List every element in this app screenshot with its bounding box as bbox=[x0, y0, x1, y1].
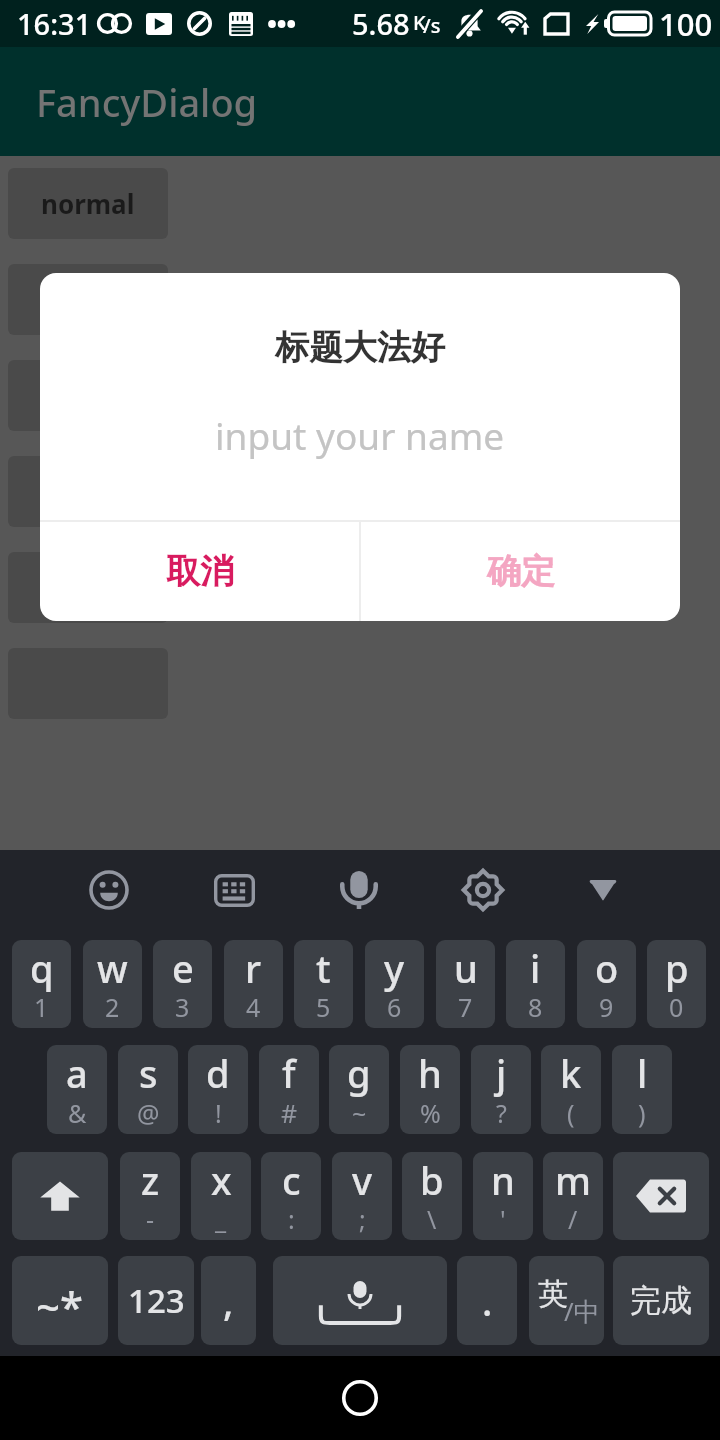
button[interactable]: u bbox=[436, 940, 495, 1028]
staticText: w bbox=[97, 942, 128, 994]
staticText: v bbox=[352, 1154, 373, 1206]
button[interactable]: i bbox=[506, 940, 565, 1028]
button[interactable]: a bbox=[8, 360, 168, 431]
staticText: # bbox=[281, 1096, 298, 1130]
staticText: : bbox=[288, 1202, 295, 1236]
button[interactable]: c bbox=[8, 264, 168, 335]
button[interactable] bbox=[8, 456, 168, 527]
staticText: ~ bbox=[352, 1096, 367, 1130]
button[interactable]: Keyboard layout bbox=[207, 863, 261, 917]
button[interactable]: Done bbox=[613, 1256, 709, 1345]
staticText: 2 bbox=[105, 990, 120, 1024]
staticText: . bbox=[482, 1275, 493, 1327]
staticText: / bbox=[568, 1202, 578, 1236]
staticText: K bbox=[413, 9, 426, 36]
button[interactable]: z bbox=[120, 1152, 180, 1240]
button[interactable]: Voice input bbox=[332, 863, 386, 917]
button[interactable]: m bbox=[543, 1152, 603, 1240]
button[interactable]: Shift bbox=[12, 1152, 108, 1240]
button[interactable]: normal bbox=[8, 168, 168, 239]
button[interactable]: Emoji bbox=[82, 863, 136, 917]
staticText: g bbox=[347, 1047, 371, 1099]
button[interactable]: e bbox=[153, 940, 212, 1028]
staticText: normal bbox=[41, 186, 135, 221]
staticText: 1 bbox=[34, 990, 49, 1024]
button[interactable]: b bbox=[402, 1152, 462, 1240]
button[interactable]: Backspace bbox=[613, 1152, 709, 1240]
staticText: s bbox=[139, 1047, 158, 1099]
staticText: ; bbox=[359, 1202, 366, 1236]
button[interactable] bbox=[8, 552, 168, 623]
button[interactable]: h bbox=[400, 1045, 460, 1134]
staticText: ~* bbox=[36, 1278, 84, 1335]
staticText: \ bbox=[427, 1202, 437, 1236]
staticText: j bbox=[496, 1047, 507, 1099]
staticText: input your name bbox=[215, 410, 505, 460]
button[interactable]: Space bbox=[273, 1256, 447, 1345]
button[interactable]: l bbox=[612, 1045, 672, 1134]
staticText: 取消 bbox=[166, 550, 234, 593]
button[interactable]: o bbox=[577, 940, 636, 1028]
staticText: x bbox=[211, 1154, 232, 1206]
button[interactable]: t bbox=[294, 940, 353, 1028]
staticText: 英 bbox=[538, 1275, 568, 1313]
staticText: 123 bbox=[128, 1278, 185, 1323]
staticText: 100 bbox=[659, 3, 713, 45]
button[interactable]: Period bbox=[457, 1256, 517, 1345]
button[interactable]: d bbox=[188, 1045, 248, 1134]
button[interactable]: Settings bbox=[456, 863, 510, 917]
button[interactable]: a bbox=[47, 1045, 107, 1134]
staticText: d bbox=[206, 1047, 230, 1099]
button[interactable]: k bbox=[541, 1045, 601, 1134]
staticText: ! bbox=[215, 1096, 222, 1130]
button[interactable]: 确定 bbox=[361, 522, 680, 621]
staticText: l bbox=[637, 1047, 648, 1099]
staticText: e bbox=[172, 942, 194, 994]
button[interactable]: j bbox=[471, 1045, 531, 1134]
staticText: r bbox=[245, 942, 262, 994]
button[interactable]: Home bbox=[332, 1370, 388, 1426]
staticText: 16:31 bbox=[17, 4, 92, 43]
staticText: ? bbox=[496, 1096, 507, 1130]
button[interactable]: g bbox=[329, 1045, 389, 1134]
button[interactable]: n bbox=[473, 1152, 533, 1240]
staticText: a bbox=[66, 1047, 88, 1099]
button[interactable]: Numbers bbox=[118, 1256, 194, 1345]
button[interactable]: Collapse keyboard bbox=[576, 863, 630, 917]
staticText: z bbox=[141, 1154, 160, 1206]
staticText: n bbox=[491, 1154, 515, 1206]
staticText: 7 bbox=[458, 990, 473, 1024]
staticText: t bbox=[316, 942, 331, 994]
staticText: , bbox=[223, 1275, 234, 1327]
staticText: % bbox=[420, 1096, 441, 1130]
button[interactable]: p bbox=[647, 940, 706, 1028]
staticText: @ bbox=[137, 1096, 160, 1130]
staticText: 完成 bbox=[630, 1281, 692, 1320]
button[interactable]: y bbox=[365, 940, 424, 1028]
button[interactable]: 取消 bbox=[40, 522, 359, 621]
staticText: - bbox=[146, 1202, 155, 1236]
staticText: o bbox=[595, 942, 619, 994]
staticText: _ bbox=[215, 1202, 227, 1236]
button[interactable]: Comma bbox=[201, 1256, 256, 1345]
button[interactable]: Switch language bbox=[529, 1256, 604, 1345]
button[interactable]: x bbox=[191, 1152, 251, 1240]
staticText: h bbox=[418, 1047, 442, 1099]
button[interactable]: Symbols bbox=[12, 1256, 108, 1345]
button[interactable]: c bbox=[261, 1152, 321, 1240]
staticText: & bbox=[68, 1096, 87, 1130]
staticText: i bbox=[530, 942, 541, 994]
button[interactable]: q bbox=[12, 940, 71, 1028]
button[interactable]: f bbox=[259, 1045, 319, 1134]
staticText: b bbox=[420, 1154, 444, 1206]
staticText: c bbox=[282, 1154, 301, 1206]
staticText: k bbox=[560, 1047, 582, 1099]
button[interactable]: s bbox=[118, 1045, 178, 1134]
staticText: p bbox=[665, 942, 689, 994]
button[interactable]: v bbox=[332, 1152, 392, 1240]
button[interactable]: r bbox=[224, 940, 283, 1028]
button[interactable]: w bbox=[83, 940, 142, 1028]
staticText: 9 bbox=[599, 990, 614, 1024]
staticText: ( bbox=[567, 1096, 575, 1130]
